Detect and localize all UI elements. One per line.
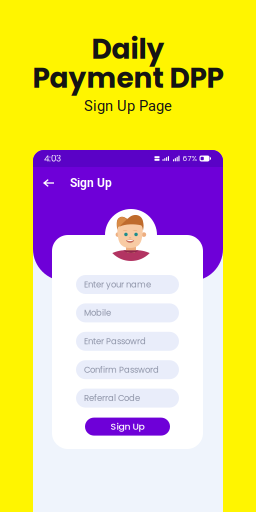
- staticText: 4:03: [44, 152, 61, 164]
- button[interactable]: Mobile: [76, 303, 179, 322]
- staticText: Enter your name: [84, 279, 151, 290]
- staticText: 67%: [182, 153, 197, 164]
- staticText: Referral Code: [84, 392, 140, 404]
- staticText: Daily: [91, 29, 164, 69]
- button[interactable]: Confirm Password: [76, 360, 179, 379]
- staticText: Sign Up Page: [84, 97, 172, 115]
- button[interactable]: Sign Up: [85, 418, 170, 436]
- staticText: Confirm Password: [84, 364, 159, 376]
- button[interactable]: Back: [39, 174, 59, 192]
- staticText: Sign Up: [70, 176, 112, 190]
- button[interactable]: Enter your name: [76, 275, 179, 294]
- staticText: Enter Passowrd: [84, 335, 146, 347]
- button[interactable]: Referral Code: [76, 389, 179, 408]
- staticText: Payment DPP: [32, 58, 223, 98]
- staticText: Mobile: [84, 307, 111, 319]
- button[interactable]: Enter Passowrd: [76, 332, 179, 351]
- staticText: Sign Up: [110, 420, 144, 433]
